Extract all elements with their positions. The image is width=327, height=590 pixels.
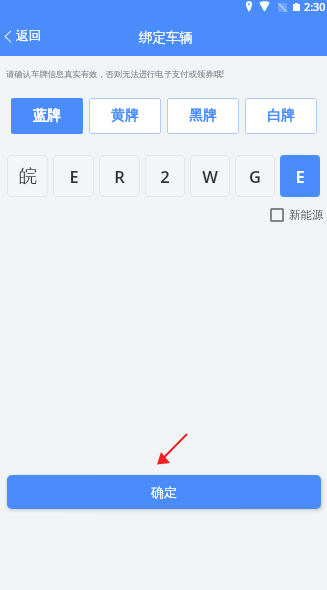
button[interactable]: 新能源 — [270, 208, 324, 222]
other: Wi-Fi — [259, 2, 270, 11]
staticText: 2 — [160, 165, 170, 187]
staticText: 2:30 — [304, 0, 326, 14]
button[interactable]: 蓝牌 — [11, 98, 83, 134]
staticText: 白牌 — [267, 107, 295, 125]
other: Location — [246, 1, 252, 12]
button[interactable]: R — [99, 155, 140, 197]
button[interactable]: G — [235, 155, 275, 197]
staticText: R — [114, 165, 125, 187]
staticText: 返回 — [16, 28, 42, 44]
staticText: 黑牌 — [189, 107, 217, 125]
staticText: 黄牌 — [111, 107, 139, 125]
staticText: 确定 — [151, 484, 177, 500]
staticText: 新能源 — [289, 208, 324, 222]
staticText: W — [202, 165, 218, 187]
other: Mobile signal — [278, 3, 287, 12]
button[interactable]: 黑牌 — [167, 98, 239, 134]
staticText: E — [295, 165, 305, 187]
button[interactable]: W — [190, 155, 230, 197]
other: Battery — [293, 3, 300, 11]
staticText: E — [69, 165, 79, 187]
button[interactable]: 白牌 — [245, 98, 317, 134]
button[interactable]: 2 — [145, 155, 185, 197]
button[interactable]: 返回 — [0, 25, 50, 47]
button[interactable]: E — [53, 155, 94, 197]
staticText: 皖 — [19, 165, 37, 188]
staticText: G — [249, 165, 261, 187]
staticText: 绑定车辆 — [139, 29, 193, 46]
button[interactable]: 黄牌 — [89, 98, 161, 134]
staticText: 请确认车牌信息真实有效，否则无法进行电子支付或领券哦! — [6, 68, 224, 79]
button[interactable]: 皖 — [7, 155, 48, 197]
button[interactable]: 确定 — [7, 475, 321, 509]
button[interactable]: E — [280, 155, 320, 197]
staticText: 蓝牌 — [33, 107, 61, 125]
